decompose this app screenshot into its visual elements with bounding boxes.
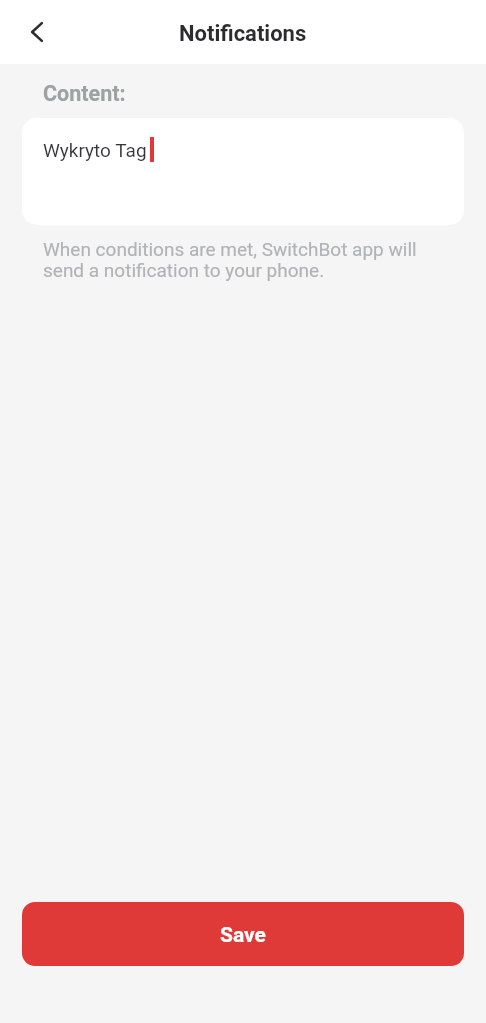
button[interactable]: Back <box>15 10 59 54</box>
staticText: Content: <box>43 81 126 106</box>
staticText: Notifications <box>179 21 307 47</box>
button[interactable]: Wykryto Tag <box>22 118 464 225</box>
staticText: When conditions are met, SwitchBot app w… <box>43 238 417 281</box>
staticText: Wykryto Tag <box>43 139 147 161</box>
staticText: Save <box>220 923 266 948</box>
button[interactable]: Save <box>22 902 464 966</box>
